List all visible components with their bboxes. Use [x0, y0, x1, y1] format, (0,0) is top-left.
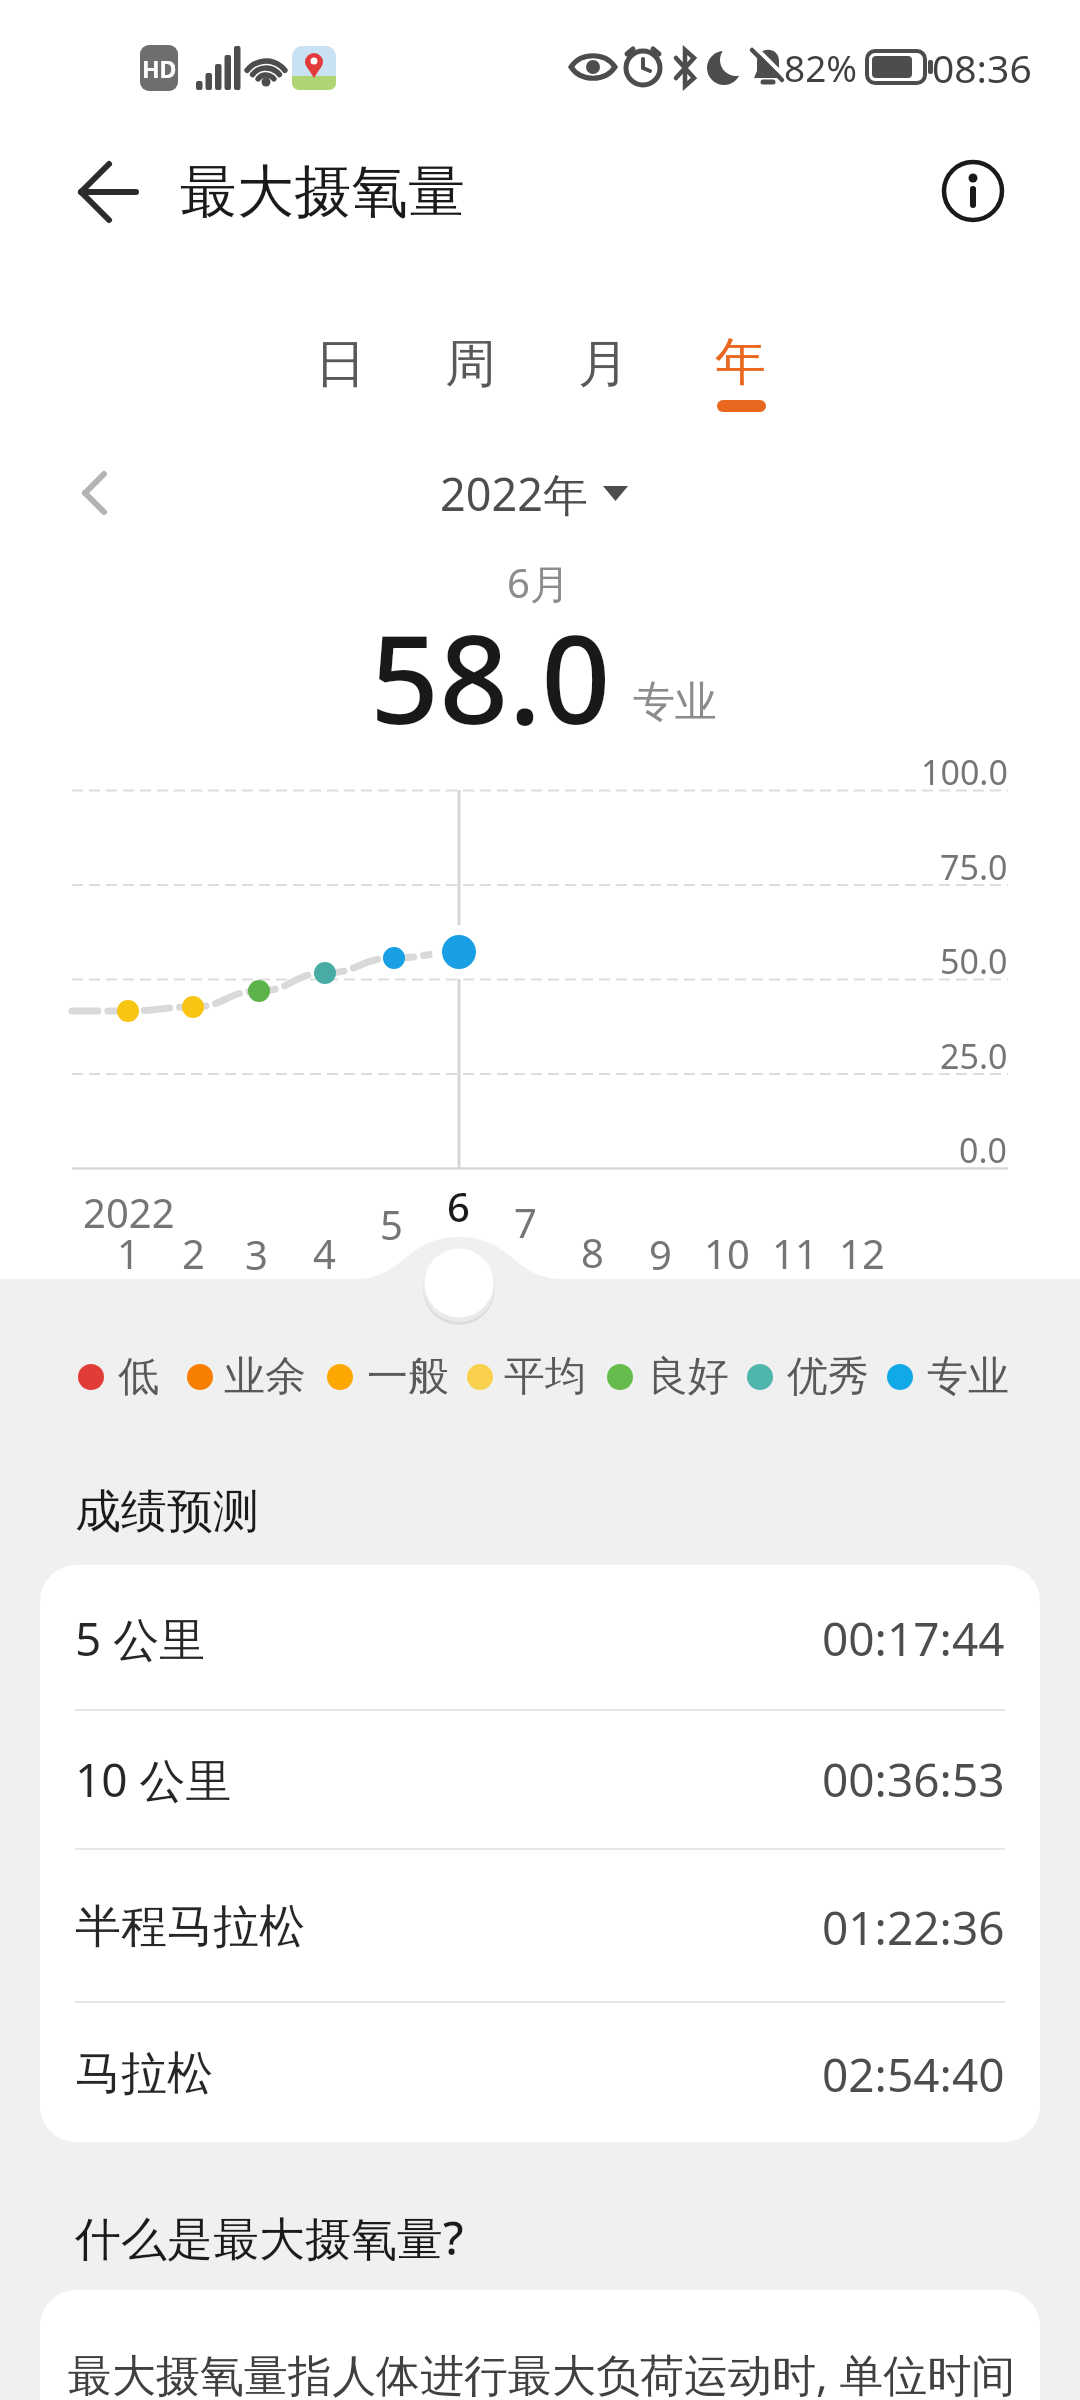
staticText: 01:22:36	[822, 1896, 1005, 1959]
staticText: 低	[118, 1351, 159, 1403]
staticText: 11	[772, 1226, 818, 1280]
staticText: 专业	[633, 676, 717, 729]
button[interactable]: 2022年	[357, 453, 717, 533]
button[interactable]	[58, 148, 158, 238]
staticText: 5	[380, 1197, 403, 1251]
staticText: 5 公里	[75, 1607, 206, 1670]
staticText: 平均	[504, 1351, 586, 1403]
staticText: 一般	[367, 1351, 449, 1403]
staticText: 10 公里	[75, 1748, 232, 1811]
staticText: 6月	[507, 555, 570, 610]
staticText: 2022	[83, 1185, 175, 1239]
button[interactable]	[414, 1238, 504, 1328]
staticText: 50.0	[940, 938, 1008, 984]
staticText: 良好	[647, 1351, 729, 1403]
staticText: 业余	[224, 1351, 306, 1403]
staticText: 马拉松	[75, 2045, 213, 2103]
staticText: 08:36	[932, 41, 1032, 94]
button[interactable]	[40, 1855, 1040, 1999]
button[interactable]: 周	[404, 319, 536, 409]
button[interactable]	[55, 453, 135, 533]
staticText: 什么是最大摄氧量?	[75, 2206, 464, 2269]
button[interactable]: 最大摄氧量	[180, 142, 880, 242]
button[interactable]: 日	[274, 319, 406, 409]
staticText: 成绩预测	[75, 1483, 259, 1541]
staticText: 10	[704, 1226, 750, 1280]
staticText: 周	[445, 332, 496, 396]
staticText: 优秀	[787, 1351, 869, 1403]
staticText: 9	[649, 1227, 672, 1281]
staticText: 8	[581, 1225, 604, 1279]
button[interactable]: 月	[537, 319, 669, 409]
staticText: 日	[315, 332, 366, 396]
staticText: 82%	[784, 42, 858, 92]
button[interactable]: 年	[674, 317, 806, 407]
staticText: 00:17:44	[822, 1607, 1005, 1670]
staticText: 半程马拉松	[75, 1898, 305, 1956]
button[interactable]	[40, 1566, 1040, 1710]
staticText: 3	[245, 1227, 268, 1281]
staticText: 6	[447, 1179, 470, 1233]
button[interactable]	[40, 2002, 1040, 2146]
staticText: 7	[514, 1195, 537, 1249]
staticText: 2	[182, 1226, 205, 1280]
staticText: 最大摄氧量	[180, 156, 465, 228]
staticText: 2022年	[440, 463, 588, 524]
staticText: HD	[142, 53, 177, 84]
button[interactable]	[40, 1707, 1040, 1851]
staticText: 年	[715, 330, 766, 394]
staticText: 最大摄氧量指人体进行最大负荷运动时, 单位时间	[68, 2344, 1016, 2400]
staticText: 00:36:53	[822, 1748, 1005, 1811]
staticText: 58.0	[370, 595, 611, 760]
staticText: 12	[839, 1226, 885, 1280]
staticText: 75.0	[940, 844, 1008, 890]
staticText: 0.0	[959, 1127, 1008, 1173]
staticText: 02:54:40	[822, 2043, 1005, 2106]
staticText: 专业	[927, 1351, 1009, 1403]
staticText: 1	[117, 1226, 140, 1280]
button[interactable]	[928, 146, 1018, 236]
staticText: 4	[313, 1226, 336, 1280]
staticText: 25.0	[940, 1033, 1008, 1079]
staticText: 月	[578, 332, 629, 396]
staticText: 100.0	[921, 749, 1008, 795]
